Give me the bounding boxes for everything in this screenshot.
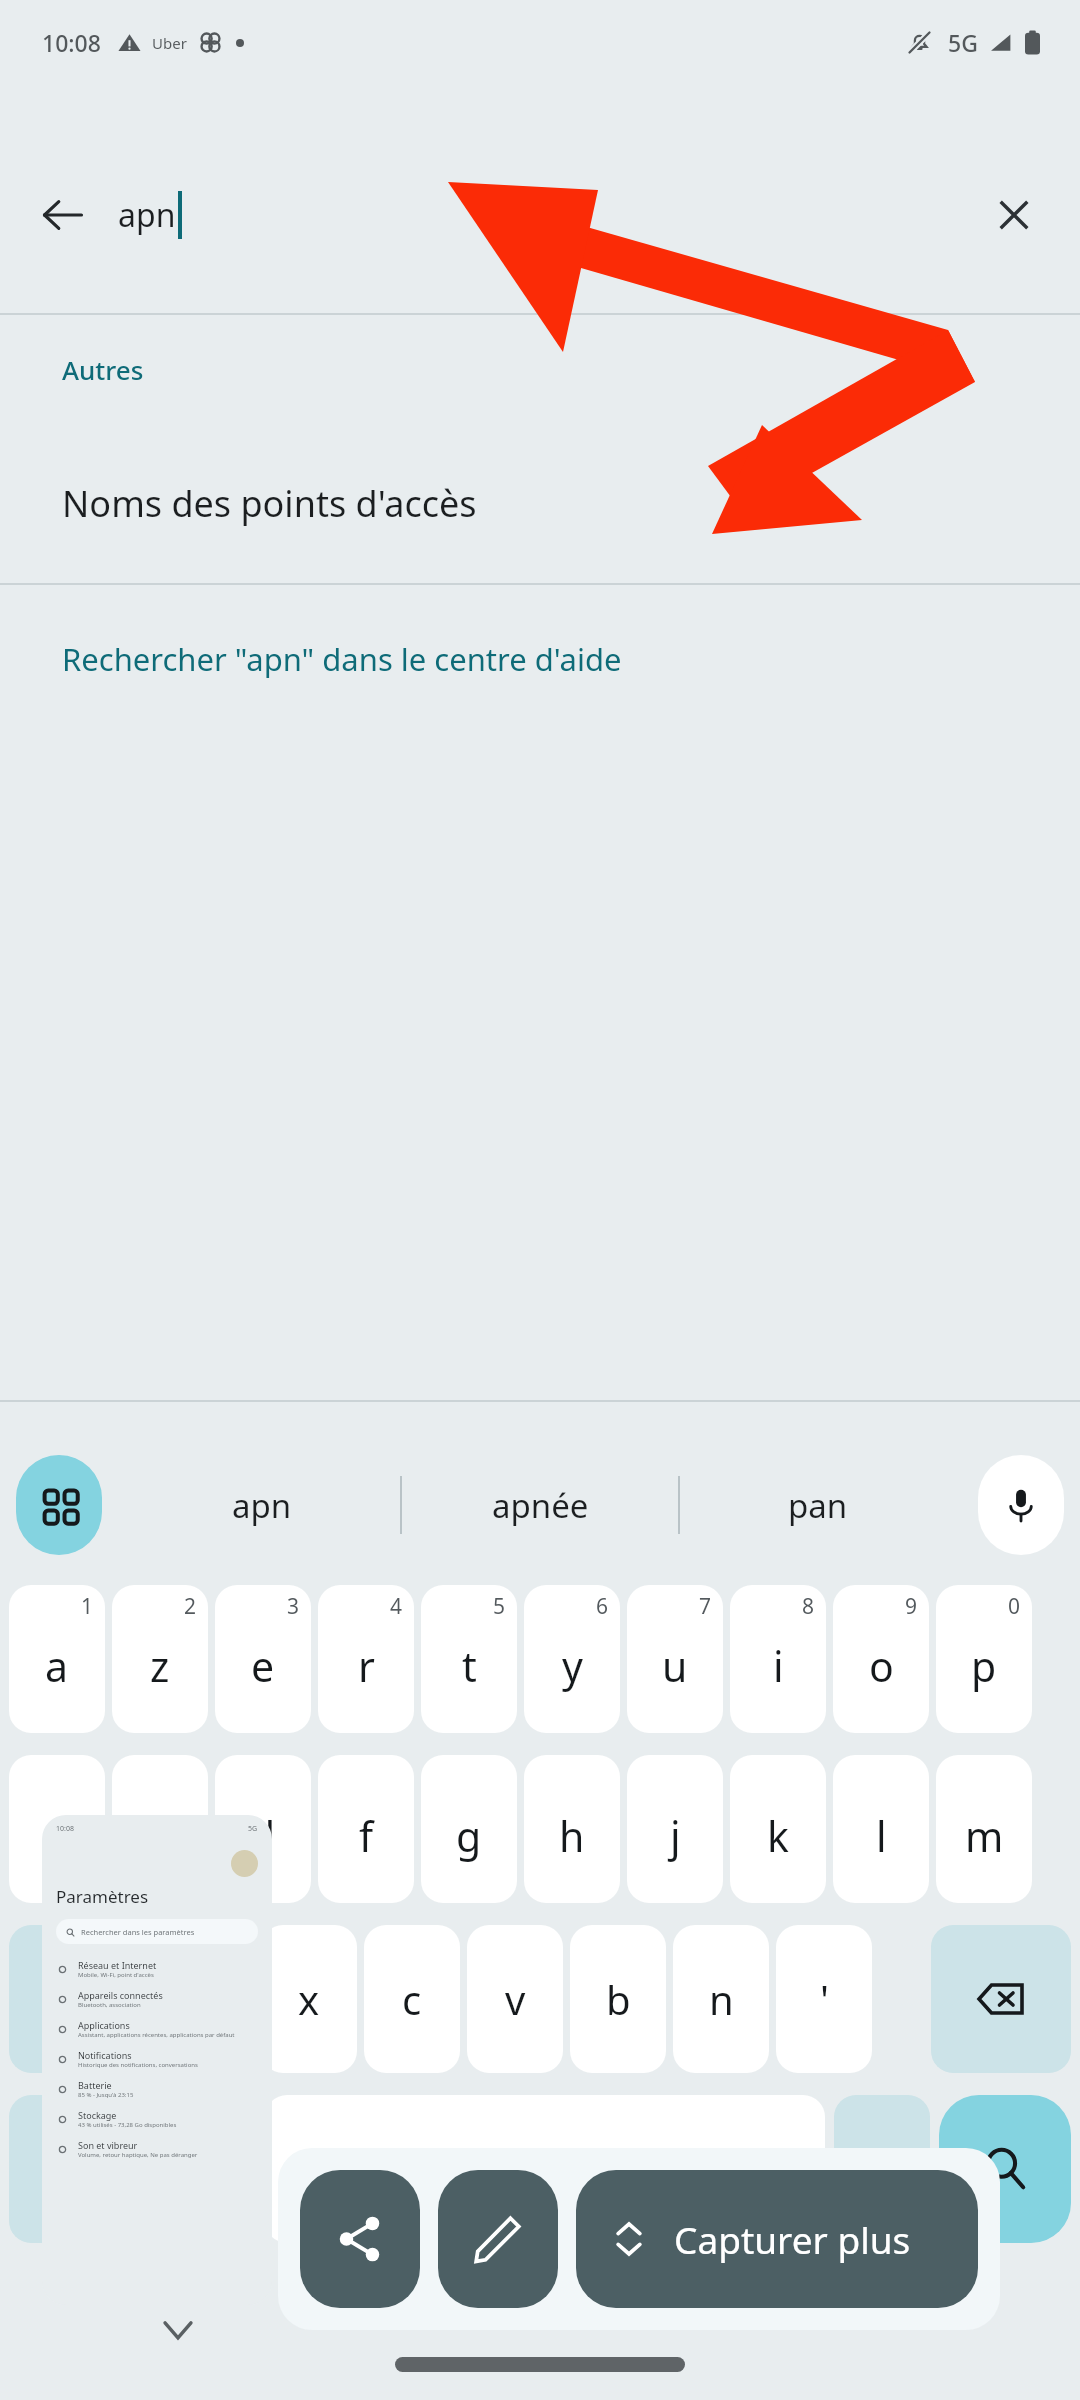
staticText: 1 — [81, 1592, 94, 1621]
button[interactable]: Rechercher — [939, 2095, 1071, 2243]
staticText: 5G — [248, 1824, 258, 1834]
button[interactable]: w — [158, 1925, 254, 2073]
button[interactable]: v — [467, 1925, 563, 2073]
staticText: 4 — [390, 1592, 403, 1621]
button[interactable]: ' — [776, 1925, 872, 2073]
staticText: Stockage — [78, 2109, 117, 2121]
button[interactable] — [395, 2357, 685, 2372]
button[interactable]: Partager — [300, 2170, 420, 2308]
staticText: apnée — [492, 1483, 589, 1528]
staticText: z — [150, 1638, 170, 1694]
staticText: 2 — [184, 1592, 197, 1621]
button[interactable]: Noms des points d'accès — [0, 423, 1080, 583]
button[interactable]: q — [9, 1755, 105, 1903]
button[interactable]: k — [730, 1755, 826, 1903]
button[interactable]: 8 — [730, 1585, 826, 1733]
staticText: q — [44, 1808, 70, 1864]
staticText: k — [767, 1808, 789, 1864]
button[interactable]: Symboles — [9, 2095, 149, 2243]
button[interactable]: 3 — [215, 1585, 311, 1733]
button[interactable]: Capturer plus — [576, 2170, 978, 2308]
staticText: y — [562, 1638, 583, 1694]
staticText: 8 — [802, 1592, 815, 1621]
button[interactable]: c — [364, 1925, 460, 2073]
staticText: 0 — [1008, 1592, 1021, 1621]
button[interactable]: Emoji — [158, 2095, 254, 2243]
button[interactable]: . — [834, 2095, 930, 2243]
button[interactable]: f — [318, 1755, 414, 1903]
staticText: Autres — [62, 352, 144, 387]
button[interactable]: n — [673, 1925, 769, 2073]
staticText: . — [877, 2142, 888, 2196]
staticText: Assistant, applications récentes, applic… — [78, 2031, 235, 2039]
staticText: j — [670, 1808, 681, 1864]
staticText: ' — [820, 1972, 829, 2026]
button[interactable]: Options — [16, 1455, 102, 1555]
button[interactable]: apnée — [402, 1440, 678, 1570]
staticText: x — [298, 1972, 320, 2026]
button[interactable]: Micro — [978, 1455, 1064, 1555]
staticText: d — [250, 1808, 276, 1864]
staticText: Capturer plus — [674, 2214, 911, 2264]
button[interactable]: Espace — [265, 2095, 825, 2243]
staticText: g — [456, 1808, 482, 1864]
button[interactable]: Modifier — [438, 2170, 558, 2308]
staticText: p — [971, 1638, 997, 1694]
staticText: s — [150, 1808, 170, 1864]
button[interactable]: pan — [680, 1440, 956, 1570]
staticText: Appareils connectés — [78, 1989, 163, 2001]
staticText: Batterie — [78, 2079, 112, 2091]
staticText: Rechercher dans les paramètres — [81, 1927, 195, 1937]
staticText: 5 — [493, 1592, 506, 1621]
staticText: 10:08 — [56, 1824, 74, 1834]
staticText: 85 % - Jusqu'à 23:15 — [78, 2091, 134, 2099]
button[interactable]: Effacer — [974, 175, 1054, 255]
button[interactable]: 2 — [112, 1585, 208, 1733]
button[interactable]: d — [215, 1755, 311, 1903]
button[interactable]: 6 — [524, 1585, 620, 1733]
staticText: h — [559, 1808, 585, 1864]
button[interactable]: 0 — [936, 1585, 1032, 1733]
button[interactable]: 4 — [318, 1585, 414, 1733]
button[interactable]: Rechercher "apn" dans le centre d'aide — [0, 585, 1080, 733]
button[interactable]: 9 — [833, 1585, 929, 1733]
staticText: 5G — [948, 27, 978, 58]
button[interactable]: apn — [124, 1440, 400, 1570]
staticText: Son et vibreur — [78, 2139, 138, 2151]
button[interactable]: j — [627, 1755, 723, 1903]
staticText: 43 % utilisés - 73,28 Go disponibles — [78, 2121, 177, 2129]
button[interactable]: b — [570, 1925, 666, 2073]
button[interactable]: Retour — [22, 174, 104, 256]
staticText: 6 — [596, 1592, 609, 1621]
button[interactable]: Majuscule — [9, 1925, 149, 2073]
staticText: v — [505, 1972, 526, 2026]
button[interactable]: x — [261, 1925, 357, 2073]
staticText: ?123 — [49, 2150, 110, 2188]
staticText: apn — [232, 1483, 292, 1528]
staticText: n — [709, 1972, 734, 2026]
button[interactable]: s — [112, 1755, 208, 1903]
button[interactable]: 5 — [421, 1585, 517, 1733]
button[interactable]: 10:08 — [42, 1815, 272, 2305]
staticText: 10:08 — [42, 27, 101, 58]
staticText: m — [965, 1808, 1004, 1864]
button[interactable]: 7 — [627, 1585, 723, 1733]
staticText: Notifications — [78, 2049, 132, 2061]
staticText: t — [462, 1638, 477, 1694]
staticText: 7 — [699, 1592, 712, 1621]
button[interactable]: l — [833, 1755, 929, 1903]
button[interactable]: g — [421, 1755, 517, 1903]
staticText: Applications — [78, 2019, 130, 2031]
staticText: c — [402, 1972, 422, 2026]
button[interactable]: Supprimer — [931, 1925, 1071, 2073]
staticText: Historique des notifications, conversati… — [78, 2061, 198, 2069]
staticText: 3 — [287, 1592, 300, 1621]
staticText: apn — [118, 193, 176, 237]
staticText: b — [606, 1972, 631, 2026]
staticText: Réseau et Internet — [78, 1959, 157, 1971]
button[interactable]: h — [524, 1755, 620, 1903]
staticText: f — [359, 1808, 374, 1864]
button[interactable]: 1 — [9, 1585, 105, 1733]
button[interactable]: m — [936, 1755, 1032, 1903]
